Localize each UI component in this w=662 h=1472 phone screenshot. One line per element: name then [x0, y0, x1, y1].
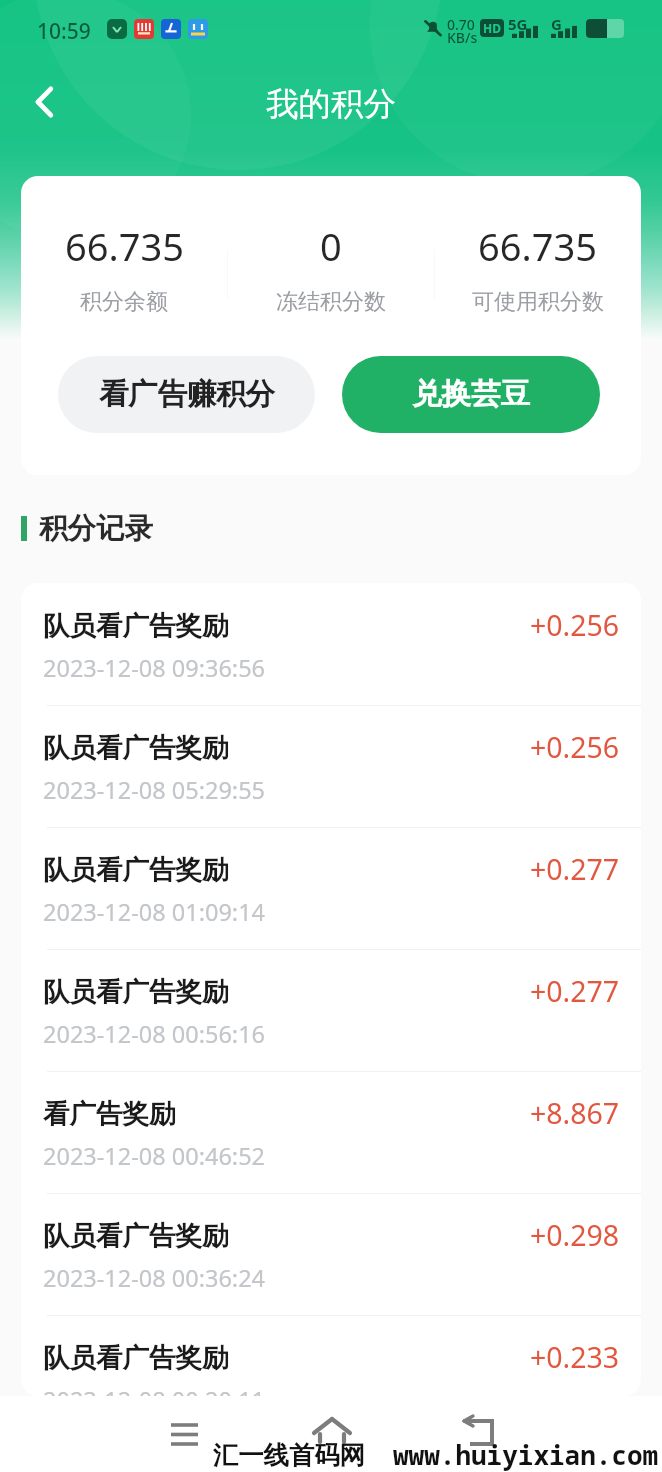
button[interactable]: 看广告赚积分 — [58, 356, 315, 433]
staticText: 队员看广告奖励 — [43, 1219, 229, 1252]
staticText: www.huiyixian.com — [393, 1437, 659, 1472]
staticText: KB/s — [447, 28, 478, 47]
staticText: 兑换芸豆 — [412, 376, 530, 413]
staticText: +0.277 — [530, 972, 620, 1011]
staticText: 积分记录 — [39, 511, 153, 547]
button[interactable]: Back — [456, 1410, 502, 1454]
staticText: 2023-12-08 00:36:24 — [43, 1262, 266, 1294]
staticText: 66.735 — [478, 220, 597, 272]
button[interactable]: Home — [306, 1408, 358, 1454]
staticText: 看广告奖励 — [43, 1097, 176, 1130]
button[interactable]: Back — [20, 76, 72, 128]
button[interactable]: Recent apps — [163, 1410, 207, 1454]
button[interactable]: 队员看广告奖励 — [21, 705, 641, 827]
staticText: 队员看广告奖励 — [43, 853, 229, 886]
staticText: 队员看广告奖励 — [43, 1341, 229, 1374]
staticText: 2023-12-08 05:29:55 — [43, 774, 266, 806]
staticText: 2023-12-08 01:09:14 — [43, 896, 266, 928]
staticText: 可使用积分数 — [472, 288, 604, 316]
button[interactable]: 队员看广告奖励 — [21, 1193, 641, 1315]
staticText: 0.70 — [447, 15, 475, 34]
staticText: G — [551, 14, 562, 34]
button[interactable]: 队员看广告奖励 — [21, 949, 641, 1071]
staticText: 2023-12-08 00:46:52 — [43, 1140, 266, 1172]
staticText: +0.256 — [530, 606, 620, 645]
staticText: 2023-12-08 00:20:11 — [43, 1384, 266, 1396]
button[interactable]: 看广告奖励 — [21, 1071, 641, 1193]
staticText: 2023-12-08 00:56:16 — [43, 1018, 266, 1050]
staticText: 我的积分 — [266, 84, 396, 125]
staticText: 汇一线首码网 — [213, 1440, 365, 1472]
staticText: +0.233 — [530, 1338, 620, 1377]
staticText: 10:59 — [37, 17, 91, 46]
staticText: +0.298 — [530, 1216, 620, 1255]
staticText: +0.256 — [530, 728, 620, 767]
button[interactable]: 兑换芸豆 — [342, 356, 600, 433]
staticText: +0.277 — [530, 850, 620, 889]
staticText: 队员看广告奖励 — [43, 975, 229, 1008]
staticText: 66.735 — [65, 220, 184, 272]
staticText: 0 — [320, 220, 342, 272]
staticText: +8.867 — [530, 1094, 620, 1133]
staticText: 冻结积分数 — [276, 288, 386, 316]
staticText: 看广告赚积分 — [99, 376, 275, 413]
staticText: 5G — [508, 14, 528, 34]
staticText: 队员看广告奖励 — [43, 609, 229, 642]
staticText: 积分余额 — [80, 288, 168, 316]
button[interactable]: 队员看广告奖励 — [21, 827, 641, 949]
button[interactable]: 队员看广告奖励 — [21, 583, 641, 705]
staticText: 2023-12-08 09:36:56 — [43, 652, 266, 684]
button[interactable]: 队员看广告奖励 — [21, 1315, 641, 1396]
staticText: HD — [483, 20, 501, 36]
staticText: 队员看广告奖励 — [43, 731, 229, 764]
